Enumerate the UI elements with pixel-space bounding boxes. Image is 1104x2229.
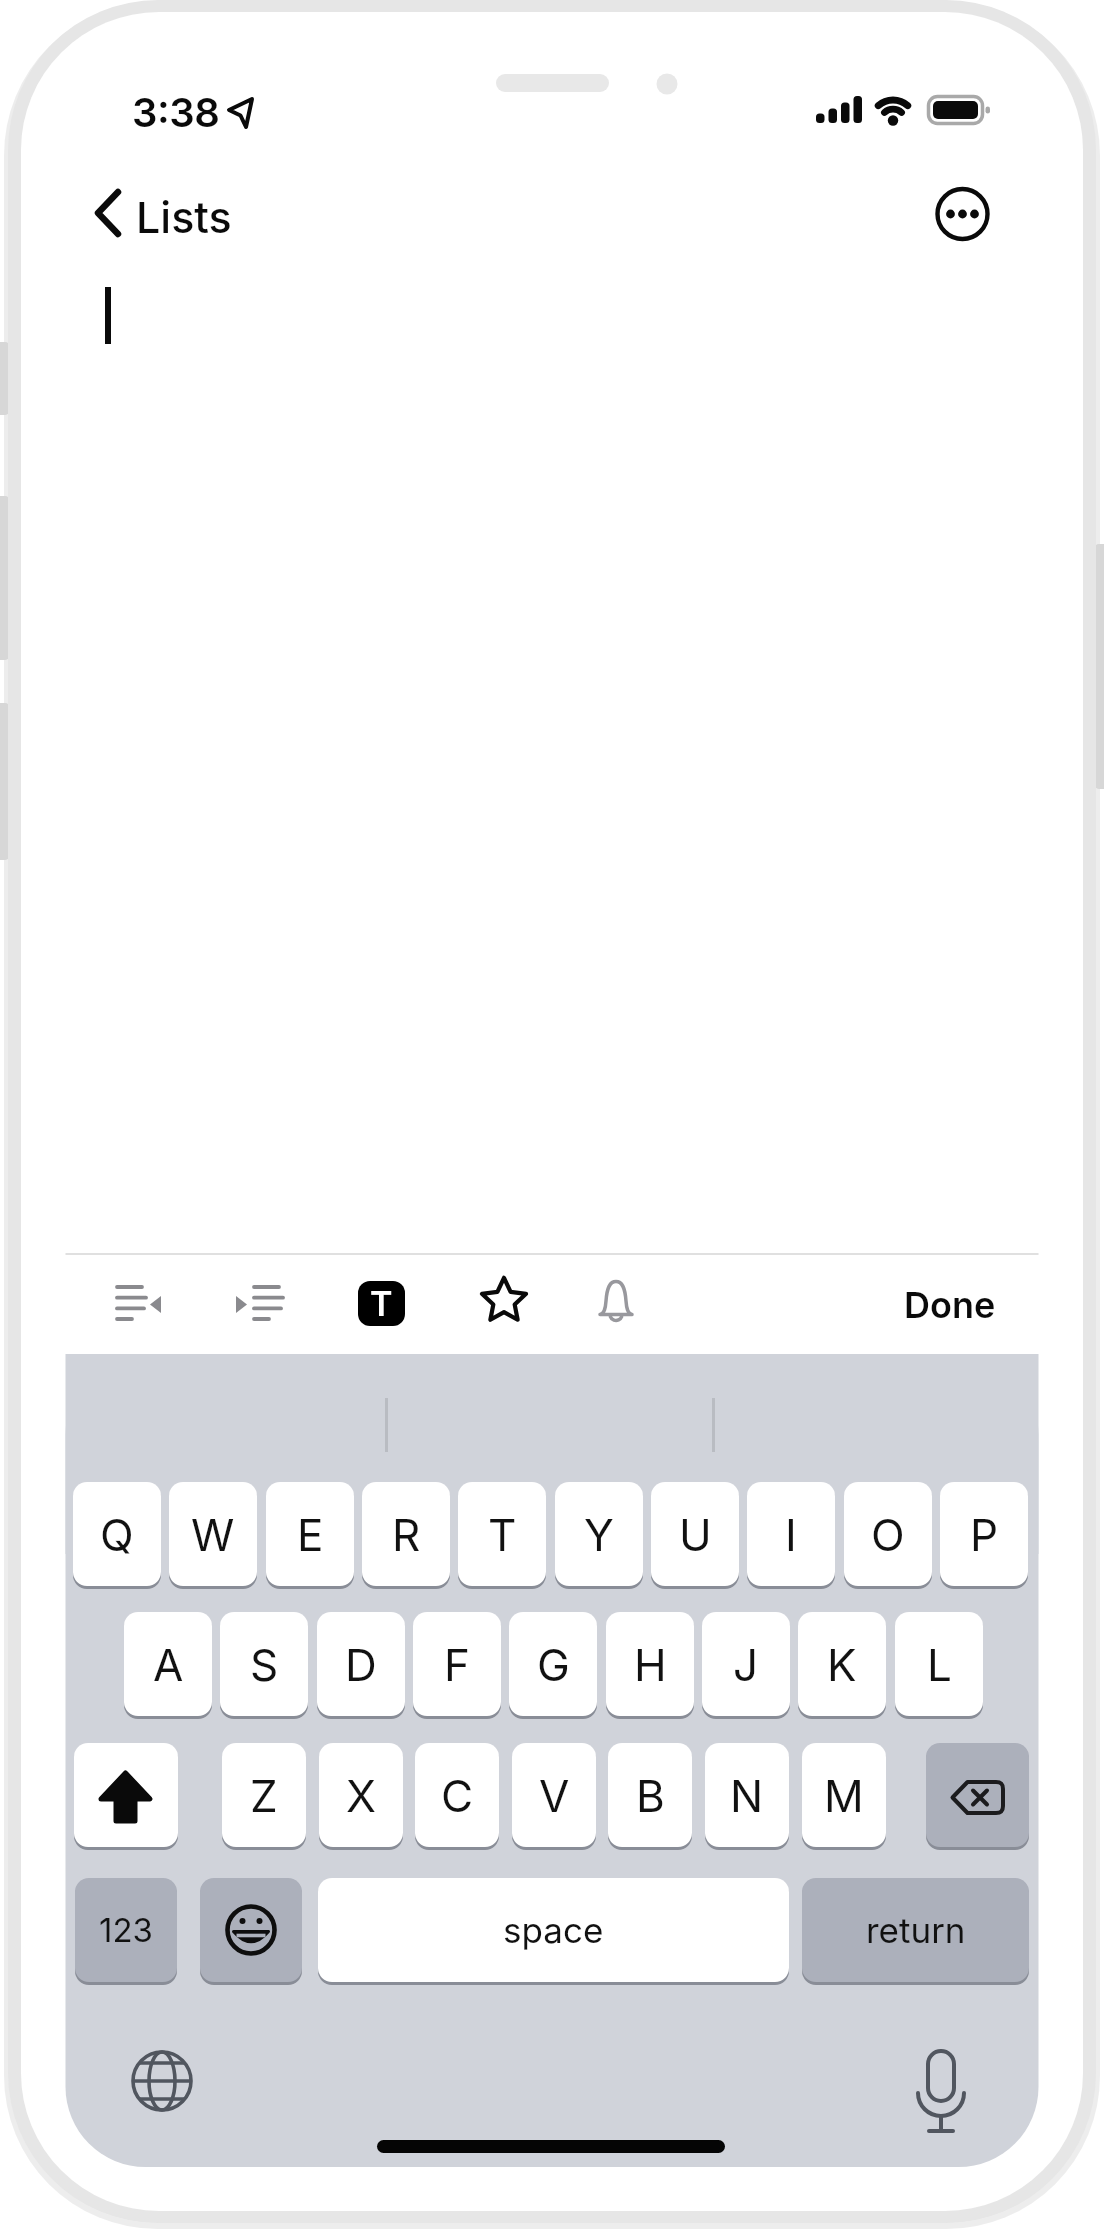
staticText: O <box>871 1508 905 1561</box>
staticText: 3:38 <box>132 88 220 136</box>
button[interactable] <box>105 1275 173 1331</box>
button[interactable]: space <box>318 1878 789 1982</box>
staticText: I <box>785 1508 797 1561</box>
button[interactable] <box>594 1275 640 1329</box>
staticText: P <box>970 1508 999 1561</box>
button[interactable]: F <box>413 1612 501 1716</box>
button[interactable]: L <box>895 1612 983 1716</box>
staticText: S <box>250 1638 279 1691</box>
button[interactable] <box>85 183 235 245</box>
staticText: Done <box>904 1283 996 1327</box>
button[interactable]: S <box>220 1612 308 1716</box>
button[interactable] <box>74 1743 178 1847</box>
staticText: X <box>346 1769 377 1822</box>
staticText: C <box>441 1769 474 1822</box>
button[interactable] <box>903 2046 981 2136</box>
button[interactable]: Q <box>73 1482 161 1586</box>
button[interactable]: T <box>358 1281 405 1326</box>
staticText: H <box>634 1638 667 1691</box>
button[interactable] <box>926 1743 1029 1847</box>
button[interactable]: U <box>651 1482 739 1586</box>
staticText: L <box>927 1638 952 1691</box>
staticText: U <box>679 1508 712 1561</box>
staticText: G <box>537 1638 570 1691</box>
staticText: D <box>345 1638 377 1691</box>
button[interactable]: W <box>169 1482 257 1586</box>
staticText: F <box>444 1638 470 1691</box>
button[interactable]: J <box>702 1612 790 1716</box>
button[interactable]: Z <box>222 1743 306 1847</box>
staticText: R <box>392 1508 421 1561</box>
button[interactable] <box>228 1275 294 1331</box>
button[interactable]: H <box>606 1612 694 1716</box>
button[interactable]: G <box>509 1612 597 1716</box>
staticText: A <box>153 1638 184 1691</box>
staticText: T <box>370 1283 393 1324</box>
staticText: B <box>636 1769 665 1822</box>
staticText: Y <box>584 1508 614 1561</box>
button[interactable]: P <box>940 1482 1028 1586</box>
button[interactable] <box>200 1878 302 1982</box>
button[interactable]: E <box>266 1482 354 1586</box>
button[interactable]: C <box>415 1743 499 1847</box>
staticText: M <box>824 1769 864 1822</box>
button[interactable]: Y <box>555 1482 643 1586</box>
button[interactable] <box>120 2051 204 2113</box>
button[interactable] <box>900 1278 1000 1330</box>
staticText: Lists <box>136 191 232 243</box>
staticText: return <box>866 1909 966 1951</box>
staticText: space <box>503 1909 604 1951</box>
staticText: V <box>539 1769 570 1822</box>
staticText: J <box>733 1638 759 1691</box>
button[interactable]: N <box>705 1743 789 1847</box>
staticText: E <box>297 1508 324 1561</box>
button[interactable]: 123 <box>75 1878 177 1982</box>
button[interactable]: X <box>319 1743 403 1847</box>
button[interactable]: B <box>608 1743 692 1847</box>
button[interactable]: O <box>844 1482 932 1586</box>
staticText: Z <box>250 1769 278 1822</box>
staticText: N <box>730 1769 764 1822</box>
button[interactable]: M <box>802 1743 886 1847</box>
button[interactable]: R <box>362 1482 450 1586</box>
button[interactable] <box>478 1275 530 1329</box>
button[interactable]: T <box>458 1482 546 1586</box>
button[interactable] <box>933 184 991 243</box>
staticText: T <box>488 1508 517 1561</box>
button[interactable]: return <box>802 1878 1029 1982</box>
staticText: W <box>191 1508 235 1561</box>
button[interactable]: K <box>798 1612 886 1716</box>
button[interactable]: D <box>317 1612 405 1716</box>
staticText: K <box>827 1638 857 1691</box>
staticText: 123 <box>99 1910 153 1950</box>
button[interactable]: V <box>512 1743 596 1847</box>
staticText: Q <box>100 1508 134 1561</box>
button[interactable]: I <box>747 1482 835 1586</box>
button[interactable]: A <box>124 1612 212 1716</box>
